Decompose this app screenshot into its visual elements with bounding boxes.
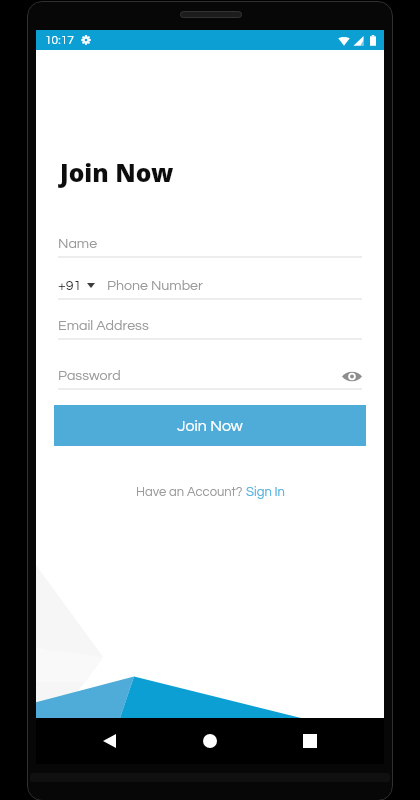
staticText: Sign In xyxy=(246,485,285,498)
button[interactable]: Home xyxy=(184,718,236,764)
button[interactable]: Sign In xyxy=(246,485,285,498)
button[interactable]: Password xyxy=(58,365,362,390)
staticText: 10:17 xyxy=(45,34,74,46)
staticText: +91 xyxy=(58,278,82,293)
button[interactable]: Email Address xyxy=(58,315,362,340)
button[interactable]: Show password xyxy=(340,365,362,385)
staticText: Email Address xyxy=(58,318,149,333)
staticText: Join Now xyxy=(60,156,174,190)
button[interactable]: +91 xyxy=(58,278,95,293)
button[interactable]: Join Now xyxy=(54,405,366,446)
button[interactable]: Name xyxy=(58,233,362,258)
staticText: Phone Number xyxy=(107,278,203,293)
button[interactable]: Back xyxy=(83,718,135,764)
button[interactable]: Recent apps xyxy=(284,718,336,764)
staticText: Password xyxy=(58,368,121,383)
staticText: Join Now xyxy=(177,418,243,434)
staticText: Have an Account? xyxy=(136,485,246,498)
staticText: Name xyxy=(58,236,98,251)
